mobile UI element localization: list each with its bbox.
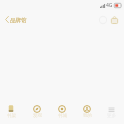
staticText: 4G [106, 2, 113, 9]
button[interactable]: Cart [109, 14, 120, 25]
staticText: 书城 [58, 113, 67, 119]
button[interactable]: Books [1, 104, 25, 124]
staticText: 发现 [33, 113, 42, 119]
staticText: 品牌馆 [10, 17, 27, 24]
button[interactable]: Account [75, 104, 99, 124]
button[interactable]: More [99, 104, 123, 124]
button[interactable]: Back [1, 14, 12, 25]
staticText: 书架 [7, 113, 16, 119]
button[interactable]: Explore [25, 104, 49, 124]
button[interactable]: Store [50, 104, 74, 124]
staticText: 我的 [83, 113, 92, 119]
